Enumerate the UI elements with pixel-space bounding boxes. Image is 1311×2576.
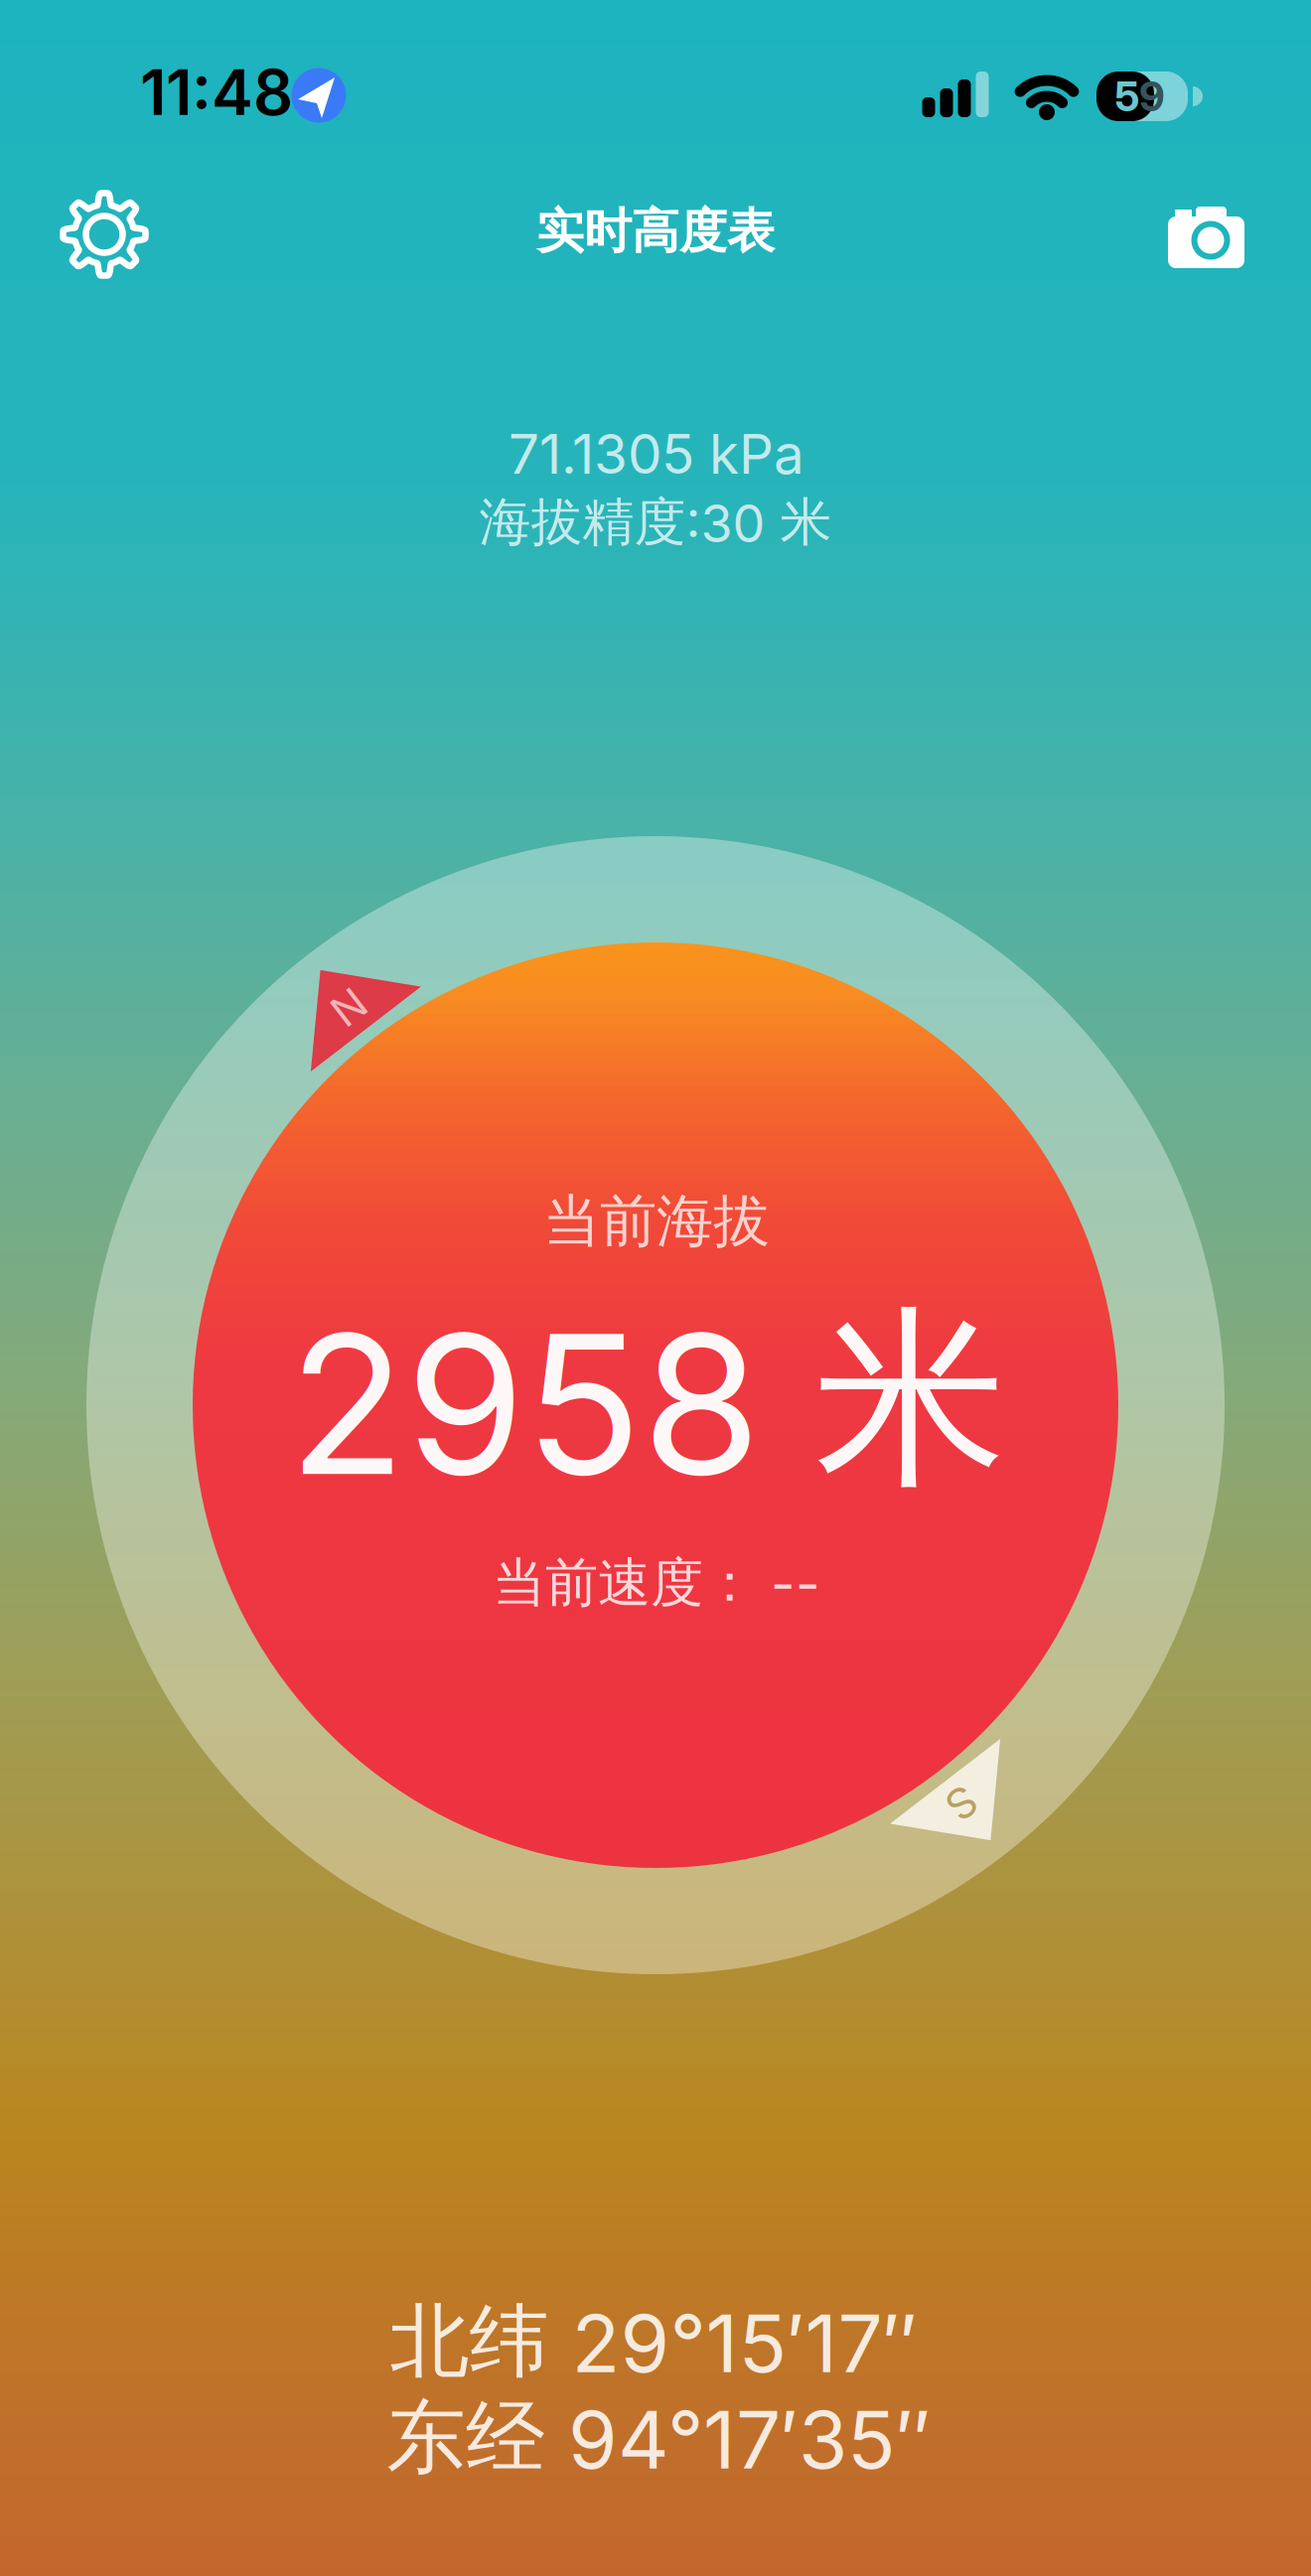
button[interactable]: 拍照: [1152, 184, 1261, 293]
staticText: S: [949, 1778, 976, 1829]
staticText: 东经 94°17′35″: [386, 2388, 931, 2488]
staticText: 当前海拔: [543, 1186, 770, 1257]
staticText: 71.1305 kPa: [509, 421, 804, 487]
staticText: 北纬 29°15′17″: [390, 2292, 917, 2392]
button[interactable]: 设置: [50, 180, 159, 289]
staticText: 11:48: [140, 55, 293, 130]
staticText: 2958 米: [289, 1279, 1007, 1521]
staticText: 9: [1139, 72, 1165, 121]
staticText: 海拔精度:30 米: [479, 490, 832, 555]
staticText: 5: [1115, 72, 1140, 121]
staticText: 实时高度表: [536, 201, 775, 261]
staticText: 当前速度： --: [493, 1550, 820, 1616]
staticText: N: [333, 981, 365, 1033]
